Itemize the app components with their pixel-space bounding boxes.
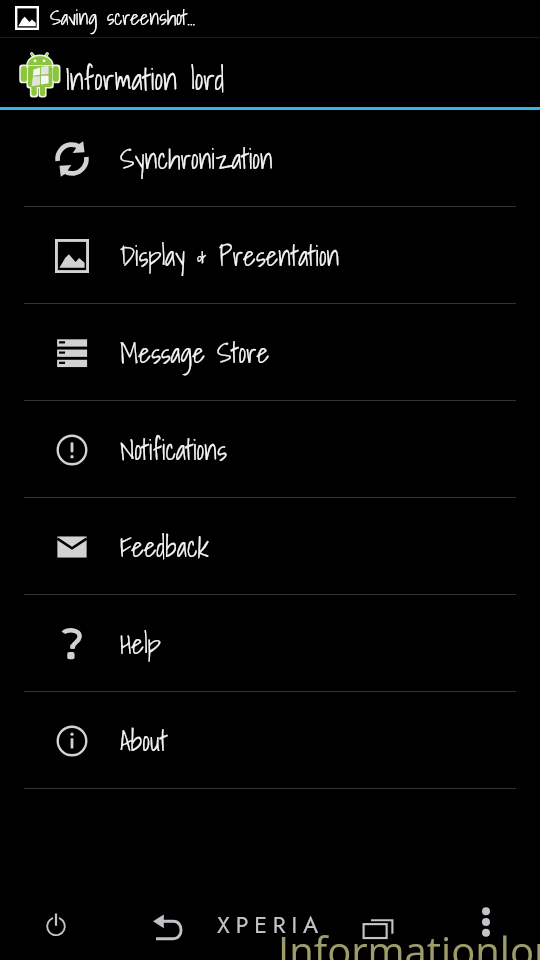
staticText: Information lord — [65, 55, 225, 103]
button[interactable]: About — [0, 692, 540, 789]
staticText: About — [120, 719, 168, 762]
staticText: Display & Presentation — [120, 234, 340, 277]
staticText: Notifications — [120, 428, 227, 471]
button[interactable]: Recent apps — [356, 905, 400, 949]
staticText: Saving screenshot... — [50, 1, 196, 34]
button[interactable]: Help — [0, 595, 540, 692]
staticText: Synchronization — [120, 137, 273, 180]
button[interactable]: Feedback — [0, 498, 540, 595]
button[interactable]: Power — [36, 905, 76, 945]
staticText: Help — [120, 622, 161, 665]
button[interactable]: More options — [468, 904, 504, 940]
button[interactable]: Synchronization — [0, 110, 540, 207]
staticText: XPERIA — [217, 908, 325, 941]
staticText: Informationlord — [278, 923, 540, 960]
button[interactable]: Display & Presentation — [0, 207, 540, 304]
button[interactable]: Back — [146, 905, 190, 949]
staticText: Feedback — [120, 525, 210, 568]
staticText: Message Store — [120, 331, 270, 374]
button[interactable]: Message Store — [0, 304, 540, 401]
button[interactable]: XPERIA — [217, 908, 325, 941]
button[interactable]: Notifications — [0, 401, 540, 498]
